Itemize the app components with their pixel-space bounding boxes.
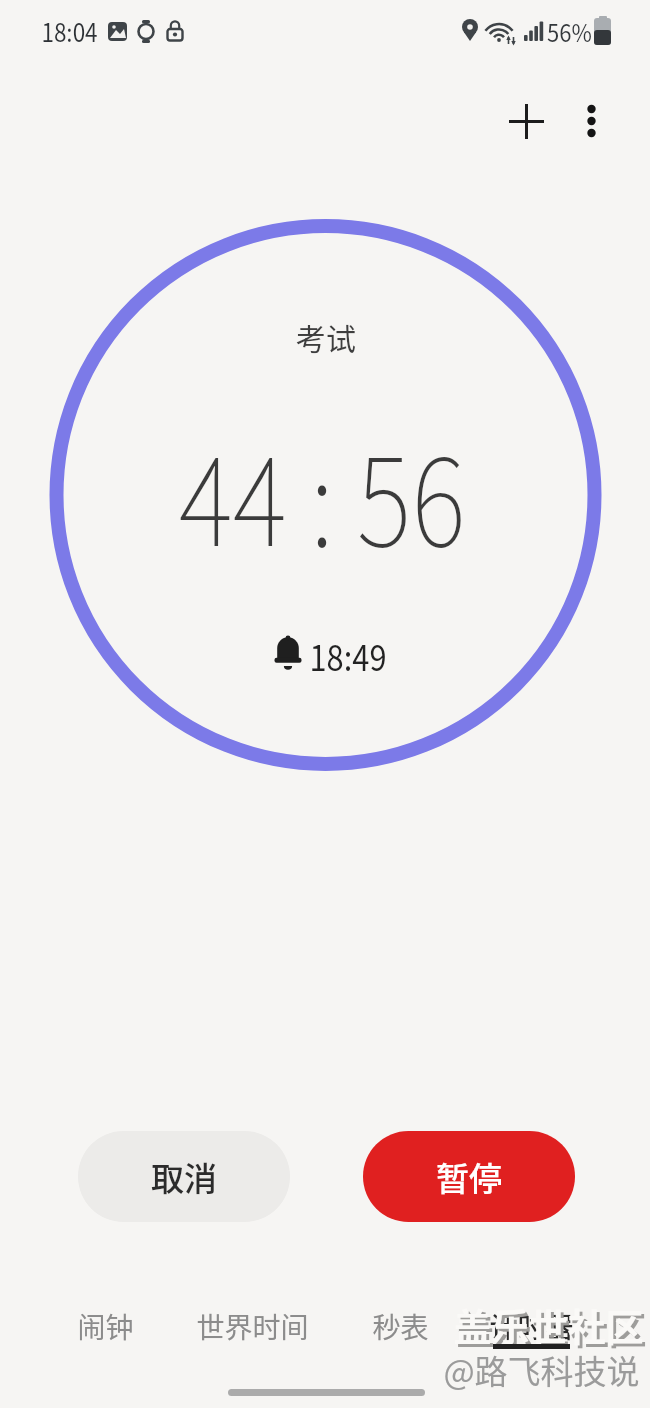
staticText: 计时器 — [489, 1306, 574, 1347]
button[interactable] — [566, 94, 618, 146]
staticText: 18:04 — [41, 13, 98, 49]
button[interactable]: 世界时间 — [172, 1296, 332, 1356]
staticText: 取消 — [151, 1153, 217, 1201]
button[interactable]: 闹钟 — [40, 1296, 170, 1356]
button[interactable]: 秒表 — [335, 1296, 465, 1356]
staticText: 考试 — [296, 315, 356, 358]
staticText: 世界时间 — [196, 1306, 309, 1347]
button[interactable]: 取消 — [78, 1131, 290, 1222]
staticText: 闹钟 — [77, 1306, 134, 1347]
button[interactable]: 计时器 — [466, 1296, 596, 1356]
staticText: 18:49 — [309, 630, 387, 681]
button[interactable] — [499, 94, 554, 149]
staticText: 秒表 — [372, 1306, 429, 1347]
staticText: 盖乐世社区 — [453, 1297, 644, 1352]
staticText: 44 : 56 — [178, 406, 466, 581]
staticText: 56% — [547, 14, 592, 49]
staticText: @路飞科技说 — [443, 1346, 640, 1394]
staticText: 暂停 — [436, 1153, 502, 1201]
button[interactable]: 暂停 — [363, 1131, 575, 1222]
staticText: 盖乐世社区 — [456, 1300, 647, 1355]
